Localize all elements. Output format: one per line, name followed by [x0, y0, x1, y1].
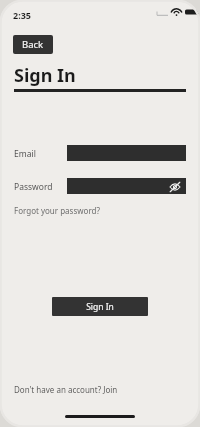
staticText: 2:35	[13, 9, 31, 21]
button[interactable]: Sign In	[52, 297, 148, 316]
button[interactable]: Back	[13, 35, 53, 54]
staticText: Email	[14, 148, 36, 160]
button[interactable]: Don't have an account? Join	[14, 384, 118, 395]
button[interactable]: Show password	[168, 180, 181, 193]
button[interactable]: Password input	[67, 178, 186, 194]
staticText: Don't have an account? Join	[14, 384, 118, 395]
staticText: Password	[14, 181, 53, 193]
staticText: Sign In	[14, 63, 76, 88]
button[interactable]: Forgot your password?	[14, 205, 100, 216]
staticText: Forgot your password?	[14, 205, 100, 216]
staticText: Back	[22, 38, 44, 51]
staticText: Sign In	[86, 301, 114, 313]
